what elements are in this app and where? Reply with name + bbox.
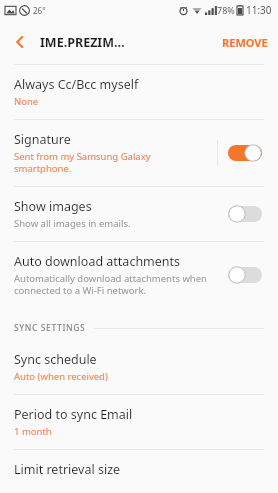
- button[interactable]: Show images: [228, 205, 262, 223]
- button[interactable]: Auto download attachments: [228, 266, 262, 284]
- staticText: Auto download attachments: [14, 253, 181, 270]
- staticText: Automatically download attachments when …: [14, 272, 207, 297]
- staticText: Show all images in emails.: [14, 217, 131, 230]
- button[interactable]: Sync schedule: [0, 340, 278, 394]
- staticText: Period to sync Email: [14, 406, 133, 423]
- button[interactable]: Signature: [228, 144, 262, 162]
- button[interactable]: Period to sync Email: [0, 395, 278, 449]
- button[interactable]: Limit retrieval size: [0, 450, 278, 493]
- staticText: Always Cc/Bcc myself: [14, 76, 139, 93]
- staticText: REMOVE: [222, 35, 268, 50]
- button[interactable]: REMOVE: [212, 27, 278, 58]
- staticText: 26°: [33, 5, 46, 16]
- staticText: Signature: [14, 131, 71, 148]
- button[interactable]: Back: [0, 22, 40, 62]
- staticText: 1 month: [14, 425, 52, 438]
- button[interactable]: Always Cc/Bcc myself: [0, 65, 278, 119]
- staticText: 11:30: [246, 3, 272, 17]
- button[interactable]: Show images: [0, 187, 278, 241]
- staticText: None: [14, 95, 39, 108]
- button[interactable]: Auto download attachments: [0, 242, 278, 308]
- staticText: Show images: [14, 198, 92, 215]
- staticText: Auto (when received): [14, 370, 108, 383]
- staticText: Limit retrieval size: [14, 461, 121, 478]
- staticText: Sent from my Samsung Galaxy smartphone.: [14, 150, 151, 175]
- staticText: SYNC SETTINGS: [14, 322, 86, 334]
- staticText: 78%: [217, 4, 235, 16]
- button[interactable]: Signature: [0, 120, 278, 186]
- staticText: IME.PREZIME@TELEKOM...: [40, 34, 126, 51]
- staticText: Sync schedule: [14, 351, 97, 368]
